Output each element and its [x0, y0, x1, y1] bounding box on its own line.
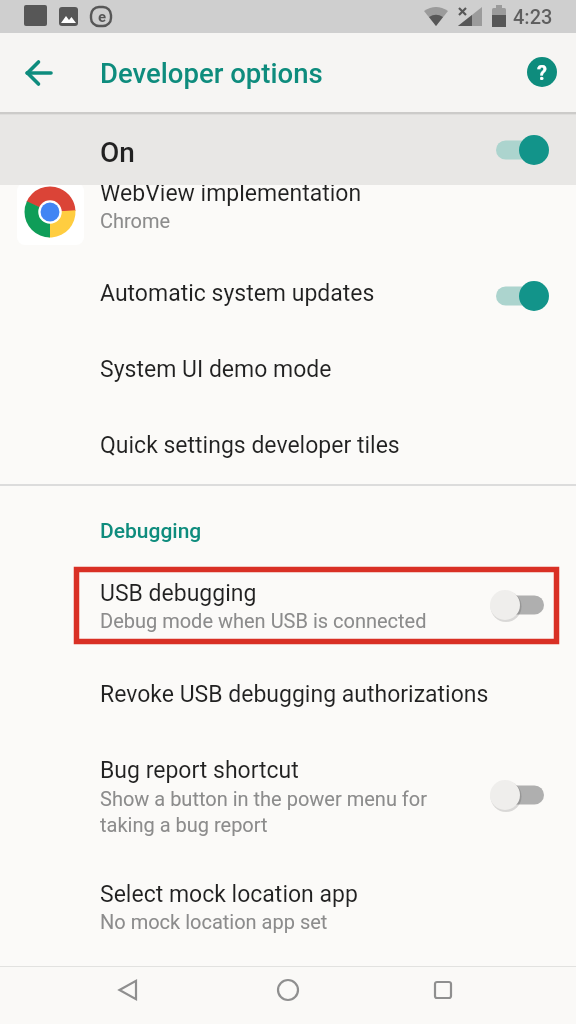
- staticText: Debug mode when USB is connected: [100, 609, 427, 632]
- button[interactable]: [0, 33, 78, 112]
- staticText: Quick settings developer tiles: [100, 432, 400, 459]
- staticText: Revoke USB debugging authorizations: [100, 681, 489, 708]
- staticText: Debugging: [100, 519, 202, 544]
- button[interactable]: [0, 566, 576, 648]
- staticText: Select mock location app: [100, 881, 358, 908]
- staticText: USB debugging: [100, 580, 257, 607]
- staticText: Bug report shortcut: [100, 757, 299, 784]
- button[interactable]: [0, 864, 576, 940]
- staticText: 4:23: [513, 5, 553, 28]
- button[interactable]: On: [0, 115, 576, 185]
- button[interactable]: [0, 740, 576, 852]
- staticText: On: [100, 136, 135, 169]
- staticText: No mock location app set: [100, 910, 328, 933]
- staticText: Developer options: [100, 57, 323, 89]
- staticText: Show a button in the power menu for taki…: [100, 787, 428, 837]
- staticText: System UI demo mode: [100, 356, 332, 383]
- button[interactable]: [103, 961, 153, 1019]
- button[interactable]: [0, 334, 576, 410]
- staticText: e: [98, 8, 107, 26]
- staticText: Automatic system updates: [100, 280, 375, 307]
- button[interactable]: [263, 961, 313, 1019]
- staticText: WebView implementation: [100, 180, 362, 207]
- button[interactable]: [0, 258, 576, 334]
- button[interactable]: [418, 961, 468, 1019]
- button[interactable]: [0, 658, 576, 734]
- button[interactable]: [0, 185, 576, 252]
- button[interactable]: [0, 410, 576, 486]
- staticText: ?: [537, 61, 547, 84]
- staticText: Chrome: [100, 209, 171, 232]
- button[interactable]: ?: [527, 57, 557, 87]
